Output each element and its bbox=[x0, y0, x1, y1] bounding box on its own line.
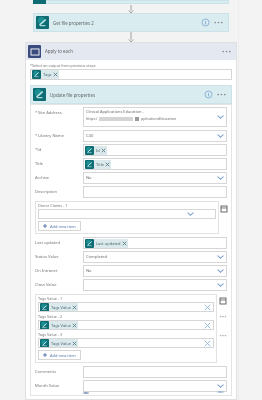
button[interactable]: Apply to each bbox=[25, 42, 237, 60]
staticText: Tags Value bbox=[51, 323, 71, 328]
staticText: Site Address bbox=[38, 110, 62, 116]
other: Remove Id bbox=[102, 149, 105, 152]
button[interactable]: Get file properties 2 bbox=[33, 13, 229, 32]
button[interactable]: Tags Value bbox=[38, 302, 214, 312]
button[interactable]: Information bbox=[205, 91, 212, 98]
button[interactable]: Item menu 1 bbox=[219, 313, 227, 320]
staticText: Title bbox=[96, 162, 104, 167]
button[interactable]: C40 bbox=[83, 130, 227, 142]
staticText: *Id bbox=[35, 147, 42, 153]
button[interactable]: Title bbox=[83, 158, 227, 170]
button[interactable]: Update file properties bbox=[30, 85, 232, 104]
button[interactable] bbox=[83, 186, 227, 198]
staticText: *Select an output from previous steps bbox=[30, 63, 96, 68]
other: Remove Tags Value bbox=[73, 324, 76, 327]
button[interactable]: Id bbox=[85, 146, 107, 155]
button[interactable]: Clinical Applications Education - bbox=[83, 107, 227, 127]
staticText: Last updated bbox=[96, 241, 121, 246]
button[interactable] bbox=[83, 279, 227, 291]
staticText: Tags bbox=[43, 72, 52, 77]
staticText: Status Value bbox=[35, 254, 59, 260]
button[interactable]: No bbox=[83, 265, 227, 277]
staticText: Tags Value - 3 bbox=[38, 332, 63, 337]
staticText: Tags Value bbox=[51, 341, 71, 346]
button[interactable] bbox=[83, 380, 227, 392]
button[interactable]: Add new item bbox=[38, 221, 81, 231]
staticText: Get file properties 2 bbox=[53, 20, 94, 26]
staticText: Clinical Applications Education - bbox=[86, 109, 144, 114]
button[interactable]: Last updated bbox=[85, 239, 128, 248]
button[interactable]: Tags bbox=[32, 70, 59, 79]
staticText: Description bbox=[35, 189, 58, 195]
other: Clear Tags Value 3 bbox=[205, 341, 210, 346]
other: Remove Last updated bbox=[123, 242, 126, 245]
button[interactable]: Tags Value bbox=[38, 320, 214, 330]
button[interactable]: Tags Value bbox=[40, 303, 78, 312]
staticText: * bbox=[35, 133, 38, 139]
other: Remove Tags bbox=[54, 73, 57, 76]
staticText: Month Value bbox=[35, 383, 60, 389]
staticText: Archive bbox=[35, 175, 50, 181]
button[interactable]: No bbox=[83, 172, 227, 184]
staticText: Comments bbox=[35, 369, 56, 375]
button[interactable]: Add new item bbox=[38, 350, 81, 360]
staticText: * bbox=[35, 110, 38, 116]
staticText: Donor Claims - 1 bbox=[38, 203, 68, 208]
staticText: pplicationsEducation bbox=[141, 116, 177, 121]
staticText: Last updated bbox=[35, 240, 61, 246]
button[interactable]: More commands bbox=[213, 19, 224, 26]
button[interactable]: More commands bbox=[221, 48, 232, 55]
staticText: No bbox=[86, 268, 92, 274]
button[interactable]: Tags bbox=[30, 69, 232, 80]
button[interactable]: Tags Value bbox=[40, 339, 78, 348]
button[interactable]: More commands bbox=[216, 91, 227, 98]
button[interactable]: Switch to input entire array bbox=[220, 298, 226, 304]
staticText: Tags Value bbox=[51, 305, 71, 310]
staticText: Title bbox=[35, 161, 44, 167]
other: Clear Tags Value 1 bbox=[205, 305, 210, 310]
button[interactable]: Last updated bbox=[83, 237, 227, 249]
staticText: Class Value bbox=[35, 282, 57, 288]
staticText: Id bbox=[96, 148, 100, 153]
staticText: Update file properties bbox=[50, 92, 96, 98]
staticText: Completed bbox=[86, 254, 108, 260]
button[interactable]: Id bbox=[83, 144, 227, 156]
button[interactable]: Information bbox=[202, 19, 209, 26]
button[interactable]: Switch to input entire array bbox=[221, 206, 227, 212]
other: Remove Tags Value bbox=[73, 306, 76, 309]
other: Remove Tags Value bbox=[73, 342, 76, 345]
staticText: Add new item bbox=[50, 224, 76, 229]
staticText: Apply to each bbox=[45, 48, 73, 54]
button[interactable] bbox=[38, 209, 216, 219]
staticText: Tags Value - 1 bbox=[38, 296, 63, 301]
other: Remove Title bbox=[106, 163, 109, 166]
staticText: No bbox=[86, 175, 92, 181]
other: Clear Tags Value 2 bbox=[205, 323, 210, 328]
staticText: Add new item bbox=[50, 353, 76, 358]
staticText: C40 bbox=[86, 133, 94, 139]
staticText: Tags Value - 2 bbox=[38, 314, 63, 319]
button[interactable]: Completed bbox=[83, 251, 227, 263]
button[interactable]: Title bbox=[85, 160, 111, 169]
staticText: On Intranet bbox=[35, 268, 58, 274]
staticText: https:/ bbox=[86, 116, 98, 121]
staticText: Library Name bbox=[38, 133, 65, 139]
button[interactable] bbox=[83, 366, 227, 378]
button[interactable]: Tags Value bbox=[40, 321, 78, 330]
button[interactable]: Tags Value bbox=[38, 338, 214, 348]
button[interactable]: Item menu 2 bbox=[219, 332, 227, 339]
